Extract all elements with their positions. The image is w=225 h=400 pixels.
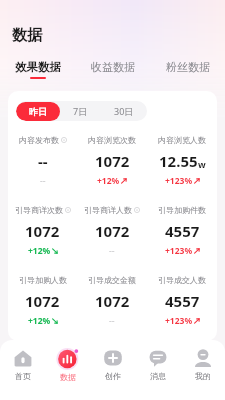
- staticText: 内容浏览次数: [88, 135, 136, 145]
- staticText: 效果数据: [15, 60, 61, 74]
- staticText: 1072: [25, 291, 60, 311]
- staticText: 7日: [73, 105, 88, 117]
- staticText: 1072: [95, 221, 130, 241]
- button[interactable]: 内容浏览人数: [147, 135, 217, 187]
- button[interactable]: 昨日: [16, 102, 60, 121]
- button[interactable]: 我的: [180, 348, 225, 381]
- staticText: 引导成交金额: [88, 275, 136, 285]
- staticText: 创作: [105, 371, 121, 381]
- staticText: 昨日: [29, 106, 47, 117]
- staticText: 引导加购件数: [158, 205, 206, 215]
- staticText: 12.55: [159, 151, 198, 171]
- staticText: +123%: [165, 175, 193, 187]
- staticText: 内容发布数: [19, 135, 59, 145]
- staticText: 30日: [114, 105, 134, 117]
- staticText: +12%: [28, 245, 51, 257]
- button[interactable]: 效果数据: [0, 57, 75, 82]
- staticText: 1072: [95, 151, 130, 171]
- button[interactable]: 引导成交人数: [147, 275, 217, 327]
- staticText: 消息: [150, 371, 166, 381]
- button[interactable]: 引导加购件数: [147, 205, 217, 257]
- staticText: 引导商详次数: [15, 205, 63, 215]
- button[interactable]: 消息: [135, 348, 180, 381]
- button[interactable]: 引导商详人数: [77, 205, 147, 257]
- staticText: 引导加购人数: [19, 275, 67, 285]
- staticText: 我的: [195, 371, 211, 381]
- staticText: --: [109, 315, 115, 327]
- button[interactable]: 引导商详次数: [8, 205, 77, 257]
- staticText: 收益数据: [91, 60, 135, 74]
- button[interactable]: 创作: [90, 348, 135, 381]
- staticText: --: [38, 151, 48, 171]
- staticText: +123%: [165, 245, 193, 257]
- button[interactable]: 30日: [101, 101, 147, 121]
- staticText: 首页: [15, 371, 31, 381]
- staticText: 4557: [165, 291, 200, 311]
- button[interactable]: 首页: [0, 348, 45, 381]
- staticText: 4557: [165, 221, 200, 241]
- staticText: --: [109, 245, 115, 257]
- button[interactable]: 引导加购人数: [8, 275, 77, 327]
- button[interactable]: 内容浏览次数: [77, 135, 147, 187]
- staticText: 粉丝数据: [166, 60, 210, 74]
- staticText: +12%: [97, 175, 120, 187]
- staticText: --: [40, 175, 46, 187]
- staticText: 数据: [60, 372, 76, 382]
- staticText: 引导成交人数: [158, 275, 206, 285]
- button[interactable]: 引导成交金额: [77, 275, 147, 327]
- staticText: 内容浏览人数: [158, 135, 206, 145]
- staticText: 引导商详人数: [84, 205, 132, 215]
- staticText: +12%: [28, 315, 51, 327]
- button[interactable]: 数据: [45, 348, 90, 382]
- staticText: 1072: [95, 291, 130, 311]
- button[interactable]: 收益数据: [75, 57, 150, 82]
- staticText: +123%: [165, 315, 193, 327]
- button[interactable]: 内容发布数: [8, 135, 77, 187]
- staticText: w: [198, 158, 206, 170]
- button[interactable]: 粉丝数据: [150, 57, 225, 82]
- button[interactable]: 7日: [60, 101, 101, 121]
- staticText: 1072: [25, 221, 60, 241]
- staticText: 数据: [12, 26, 42, 45]
